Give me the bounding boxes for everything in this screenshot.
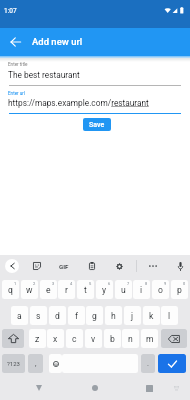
button[interactable]: o (152, 280, 169, 299)
button[interactable]: y (96, 280, 113, 299)
button[interactable]: u (115, 280, 132, 299)
staticText: The best restaurant (8, 70, 80, 80)
staticText: p (177, 285, 182, 295)
button[interactable]: k (143, 306, 160, 325)
button[interactable]: Enter (158, 354, 186, 373)
button[interactable]: x (47, 329, 64, 348)
staticText: 6 (108, 281, 111, 286)
button[interactable]: l (161, 306, 178, 325)
button[interactable]: More options (146, 259, 160, 273)
staticText: Save (89, 121, 105, 129)
button[interactable]: Emoji (49, 354, 62, 373)
button[interactable]: Backspace (161, 329, 187, 348)
button[interactable]: a (11, 306, 28, 325)
staticText: 1:07 (4, 7, 17, 15)
staticText: https://maps.example.com/restaurant (8, 98, 149, 108)
staticText: ?123 (7, 360, 20, 367)
staticText: Enter title (8, 62, 28, 67)
staticText: t (84, 285, 87, 295)
button[interactable]: Settings (112, 259, 126, 273)
staticText: j (131, 311, 134, 321)
staticText: z (35, 334, 40, 344)
staticText: Add new url (32, 36, 83, 47)
button[interactable]: m (141, 329, 158, 348)
button[interactable]: GIF (56, 258, 72, 274)
staticText: 7 (127, 281, 130, 286)
staticText: Enter url (8, 91, 25, 96)
staticText: l (168, 311, 171, 321)
staticText: u (121, 285, 126, 295)
staticText: 4 (70, 281, 73, 286)
button[interactable]: e (40, 280, 57, 299)
staticText: s (36, 311, 41, 321)
staticText: x (53, 334, 58, 344)
staticText: 9 (164, 281, 167, 286)
button[interactable]: v (85, 329, 102, 348)
staticText: , (35, 359, 37, 368)
button[interactable]: h (105, 306, 122, 325)
staticText: . (147, 359, 149, 368)
button[interactable]: , (28, 354, 43, 373)
staticText: k (149, 311, 154, 321)
button[interactable]: f (68, 306, 85, 325)
button[interactable]: j (124, 306, 141, 325)
button[interactable]: q (2, 280, 19, 299)
staticText: q (8, 285, 13, 295)
staticText: 0 (183, 281, 186, 286)
button[interactable]: ?123 (2, 354, 25, 373)
button[interactable]: Voice input (173, 259, 187, 273)
button[interactable]: Hide keyboard (169, 381, 183, 395)
staticText: y (102, 285, 107, 295)
button[interactable]: Shift (2, 329, 24, 348)
staticText: i (140, 285, 143, 295)
staticText: 5 (89, 281, 92, 286)
button[interactable]: n (122, 329, 139, 348)
staticText: d (55, 311, 60, 321)
staticText: m (146, 334, 154, 344)
button[interactable]: g (86, 306, 103, 325)
staticText: n (128, 334, 133, 344)
staticText: GIF (59, 263, 69, 270)
staticText: w (26, 285, 33, 295)
staticText: r (65, 285, 68, 295)
button[interactable]: p (171, 280, 188, 299)
button[interactable]: z (29, 329, 46, 348)
button[interactable]: w (21, 280, 38, 299)
button[interactable]: Clipboard (85, 259, 99, 273)
button[interactable]: Stickers (30, 259, 44, 273)
staticText: 2 (33, 281, 36, 286)
button[interactable]: i (133, 280, 150, 299)
button[interactable]: r (58, 280, 75, 299)
button[interactable]: Back (32, 381, 46, 395)
staticText: c (72, 334, 77, 344)
button[interactable]: d (49, 306, 66, 325)
staticText: e (46, 285, 51, 295)
button[interactable]: . (141, 354, 155, 373)
button[interactable]: Home (88, 381, 102, 395)
button[interactable]: Close keyboard toolbar (5, 259, 19, 273)
button[interactable]: c (66, 329, 83, 348)
button[interactable]: Save (83, 118, 111, 131)
staticText: a (17, 311, 22, 321)
button[interactable]: s (30, 306, 47, 325)
staticText: g (92, 311, 97, 321)
staticText: h (111, 311, 116, 321)
staticText: f (75, 311, 78, 321)
staticText: 3 (52, 281, 55, 286)
staticText: o (158, 285, 163, 295)
staticText: v (91, 334, 96, 344)
button[interactable]: b (104, 329, 121, 348)
button[interactable]: Navigate up (6, 33, 24, 51)
button[interactable]: Recent apps (142, 381, 156, 395)
button[interactable]: t (77, 280, 94, 299)
staticText: b (110, 334, 115, 344)
staticText: 8 (145, 281, 148, 286)
staticText: 1 (14, 281, 17, 286)
